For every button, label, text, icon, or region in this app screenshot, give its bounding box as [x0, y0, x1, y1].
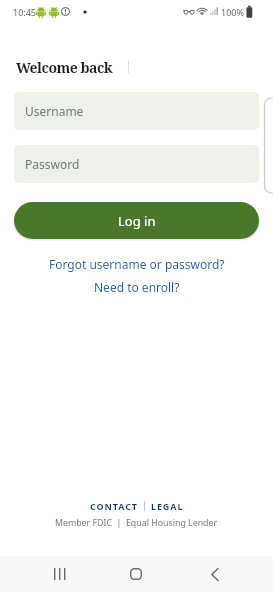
staticText: Password — [25, 156, 80, 172]
staticText: Log in — [118, 212, 156, 230]
staticText: 10:45 — [13, 6, 37, 18]
button[interactable] — [120, 559, 152, 589]
staticText: 100% — [221, 6, 244, 18]
button[interactable]: Forgot username or password? — [49, 256, 225, 272]
button[interactable]: CONTACT — [90, 500, 138, 512]
staticText: Username — [25, 103, 84, 119]
button[interactable] — [199, 559, 231, 589]
button[interactable]: Need to enroll? — [94, 279, 180, 295]
staticText: Welcome back — [16, 58, 113, 77]
button[interactable] — [44, 559, 76, 589]
button[interactable]: LEGAL — [151, 500, 184, 512]
button[interactable]: Username — [14, 92, 259, 130]
button[interactable]: Password — [14, 145, 259, 183]
button[interactable]: Log in — [14, 202, 259, 239]
staticText: Member FDIC | Equal Housing Lender — [55, 517, 218, 529]
